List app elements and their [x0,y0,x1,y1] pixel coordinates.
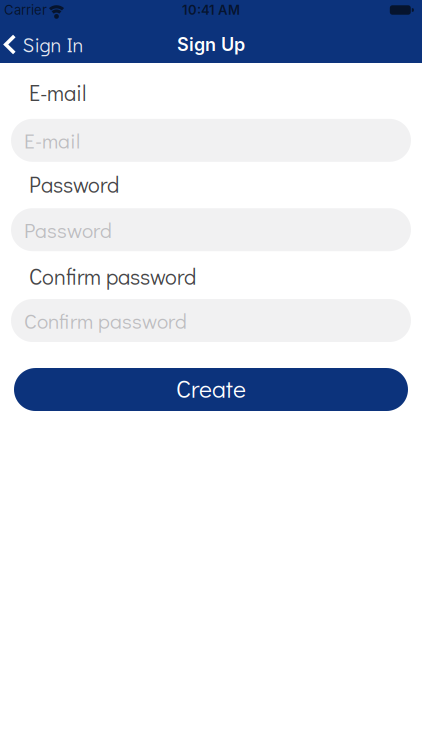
staticText: Confirm password [24,307,187,334]
button[interactable]: Confirm password [0,299,422,342]
staticText: Password [24,216,112,243]
staticText: Create [176,372,246,404]
staticText: E-mail [24,126,80,154]
staticText: Sign Up [177,34,245,55]
button[interactable]: Create [0,368,422,411]
button[interactable]: Password [0,208,422,251]
staticText: Confirm password [29,262,196,290]
staticText: Carrier [4,2,47,18]
staticText: Sign [22,31,61,58]
button[interactable]: Sign [3,31,83,58]
button[interactable]: Sign Up [177,34,245,55]
staticText: 10:41 AM [182,2,240,18]
staticText: In [66,31,83,58]
staticText: E-mail [29,78,86,107]
staticText: Password [29,170,119,199]
button[interactable]: E-mail [0,119,422,162]
